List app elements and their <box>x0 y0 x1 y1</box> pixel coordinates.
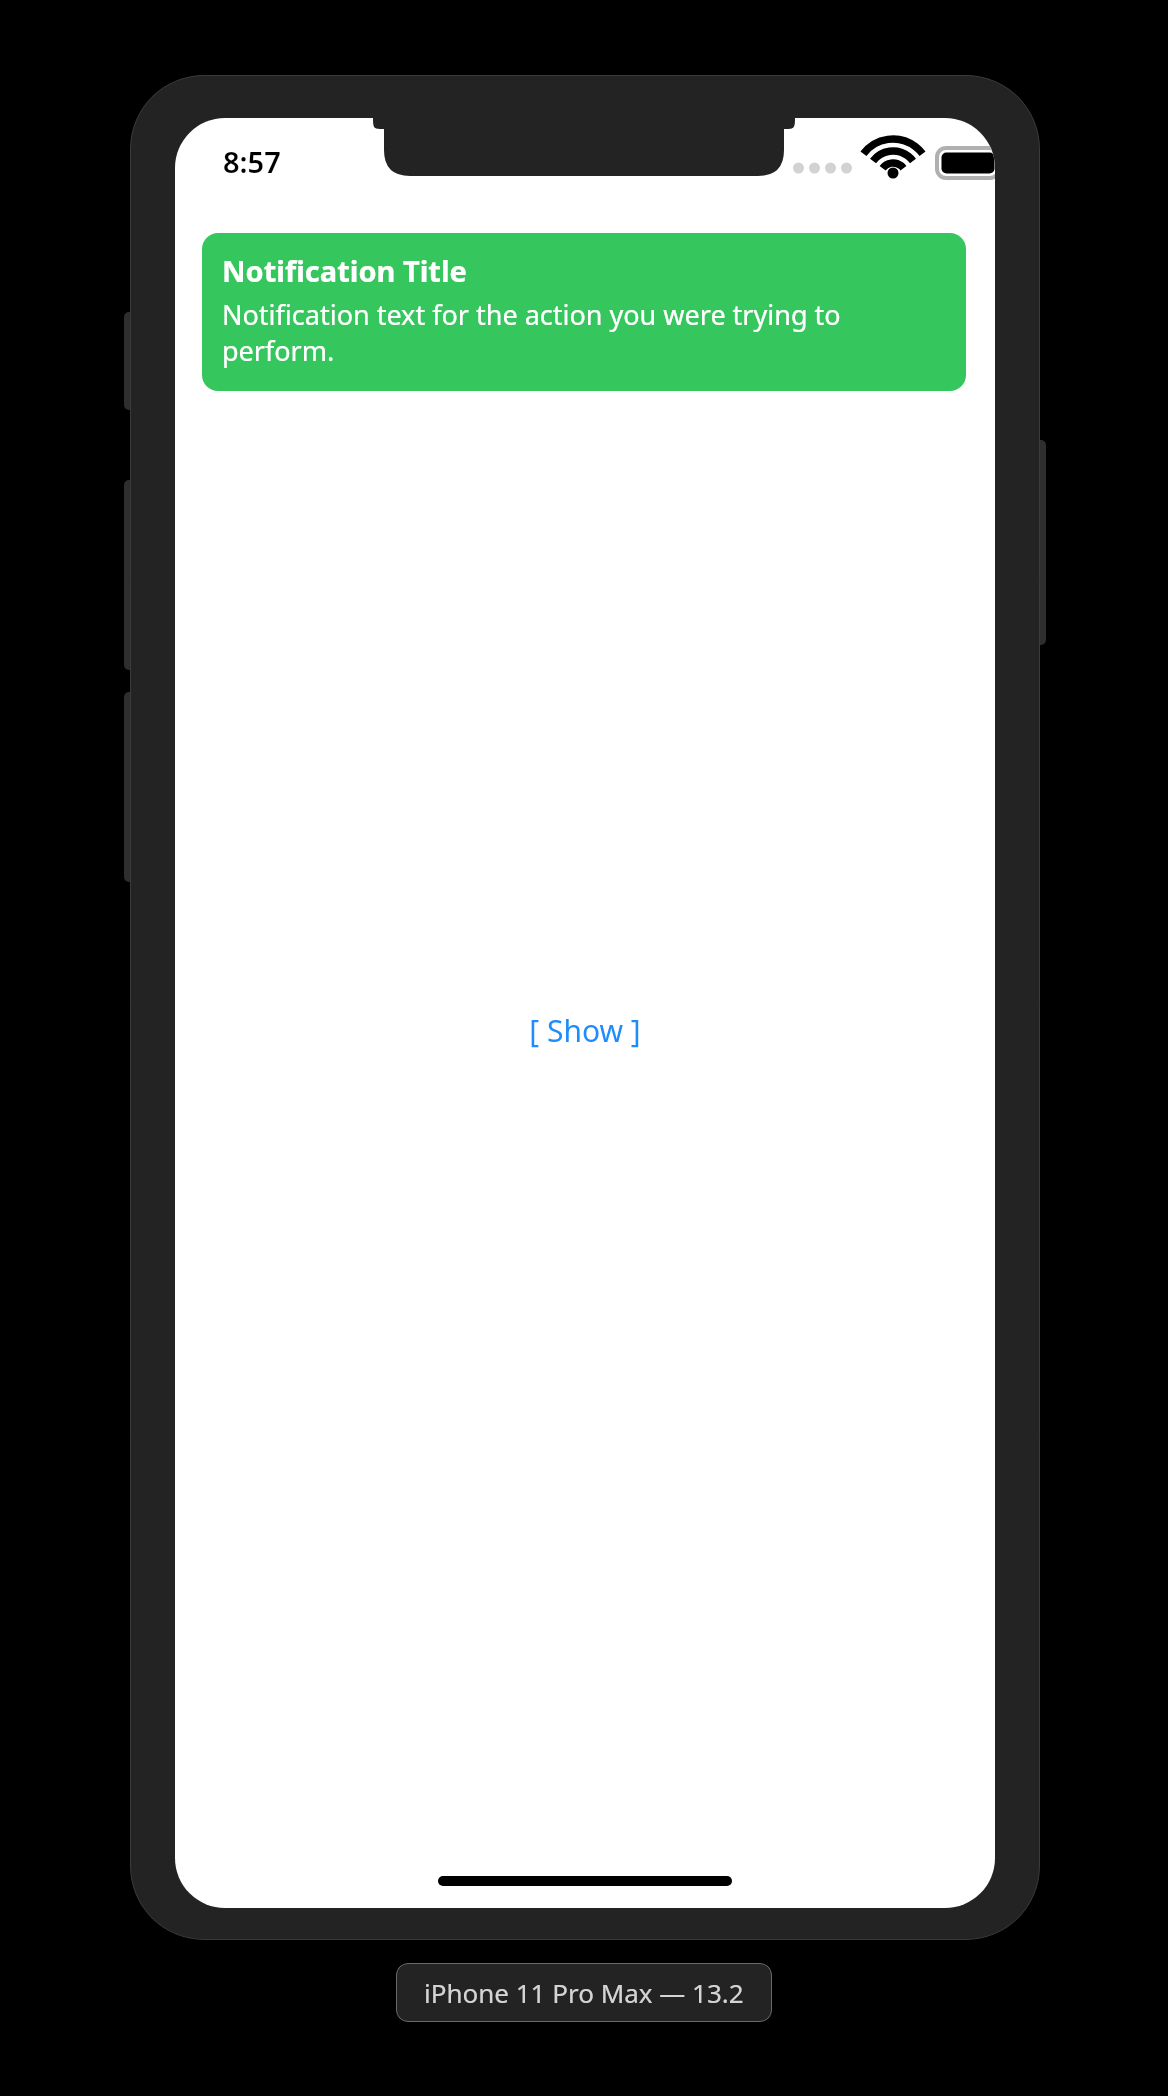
staticText: Notification text for the action you wer… <box>222 296 946 369</box>
staticText: [ Show ] <box>529 1010 641 1051</box>
staticText: 8:57 <box>223 142 281 181</box>
other: Home indicator <box>438 1876 732 1886</box>
button[interactable]: iPhone 11 Pro Max — 13.2 <box>396 1963 772 2022</box>
staticText: Notification Title <box>222 251 467 290</box>
staticText: iPhone 11 Pro Max — 13.2 <box>424 1975 744 2010</box>
button[interactable]: [ Show ] <box>515 1004 655 1057</box>
button[interactable]: Notification Title <box>202 233 966 391</box>
